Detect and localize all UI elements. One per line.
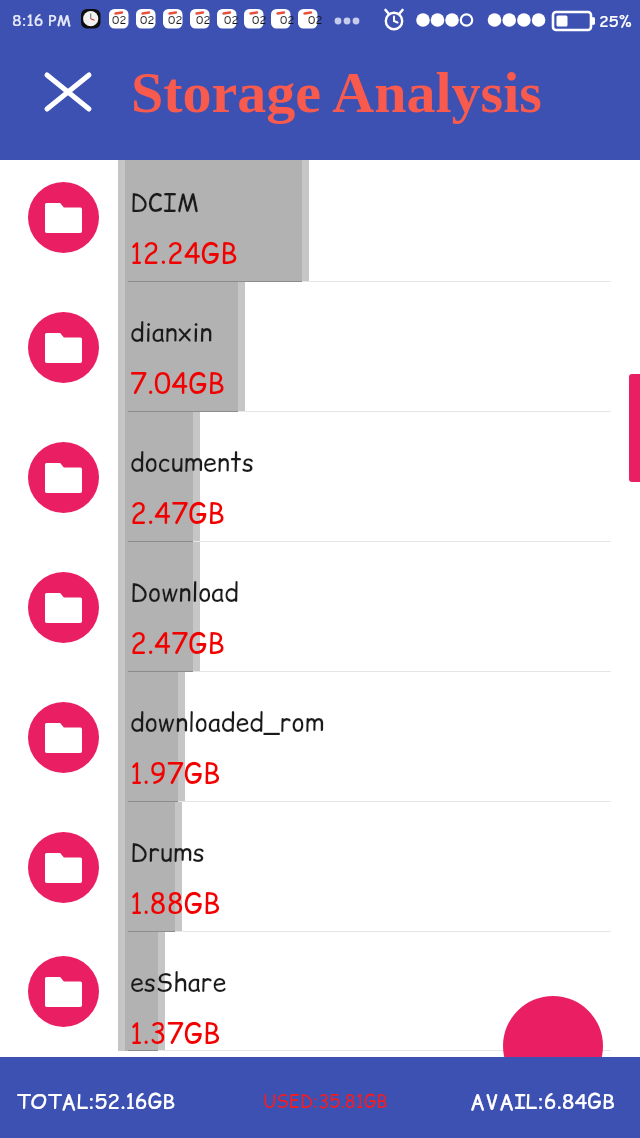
staticText: Download — [130, 575, 239, 610]
staticText: USED:35.81GB — [263, 1089, 388, 1114]
staticText: 7.04GB — [130, 363, 225, 402]
button[interactable]: USED:35.81GB — [253, 1057, 403, 1138]
staticText: 1.97GB — [130, 753, 221, 792]
staticText: 2.47GB — [130, 493, 225, 532]
staticText: 02 — [112, 11, 127, 28]
button[interactable]: DCIM — [0, 158, 640, 282]
staticText: 02 — [168, 11, 183, 28]
button[interactable]: documents — [0, 412, 640, 542]
staticText: 02 — [196, 11, 211, 28]
staticText: AVAIL:6.84GB — [470, 1087, 615, 1116]
staticText: 2.47GB — [130, 623, 225, 662]
button[interactable]: downloaded_rom — [0, 672, 640, 802]
button[interactable]: dianxin — [0, 282, 640, 412]
staticText: 02 — [308, 11, 323, 28]
button[interactable]: AVAIL:6.84GB — [460, 1057, 632, 1138]
staticText: Storage Analysis — [131, 60, 542, 124]
staticText: 8:16 PM — [12, 9, 71, 31]
staticText: 1.37GB — [130, 1013, 221, 1052]
staticText: TOTAL:52.16GB — [16, 1087, 176, 1116]
staticText: Drums — [130, 835, 205, 870]
staticText: 02 — [280, 11, 295, 28]
staticText: downloaded_rom — [130, 705, 325, 740]
button[interactable]: TOTAL:52.16GB — [6, 1057, 186, 1138]
button[interactable]: Drums — [0, 802, 640, 932]
button[interactable]: esShare — [0, 932, 640, 1051]
staticText: 12.24GB — [130, 233, 238, 272]
staticText: dianxin — [130, 315, 213, 350]
button[interactable]: Add — [503, 996, 603, 1096]
button[interactable]: Close — [38, 60, 98, 124]
staticText: 02 — [252, 11, 267, 28]
staticText: 02 — [140, 11, 155, 28]
staticText: 25% — [599, 10, 632, 32]
staticText: documents — [130, 445, 254, 480]
button[interactable]: Download — [0, 542, 640, 672]
staticText: esShare — [130, 965, 227, 1000]
staticText: 1.88GB — [130, 883, 221, 922]
staticText: 02 — [224, 11, 239, 28]
staticText: DCIM — [130, 185, 199, 220]
